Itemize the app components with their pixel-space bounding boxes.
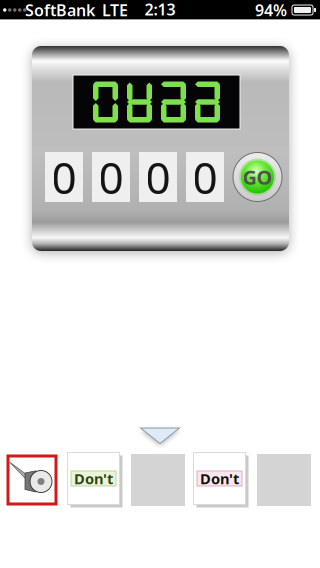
staticText: 2:13 xyxy=(144,0,175,20)
staticText: Don't xyxy=(200,469,239,488)
button[interactable]: Don't green stamp xyxy=(68,453,122,507)
staticText: 0 xyxy=(192,148,217,206)
staticText: 0 xyxy=(145,148,170,206)
staticText: SoftBank xyxy=(25,0,95,21)
button[interactable]: Don't pink stamp xyxy=(194,453,248,507)
staticText: 0 xyxy=(51,148,76,206)
staticText: LTE xyxy=(102,0,128,21)
button[interactable]: GO xyxy=(233,152,282,201)
button[interactable]: Pin tool xyxy=(5,453,59,507)
staticText: 94% xyxy=(255,0,287,21)
staticText: GO xyxy=(242,164,272,190)
staticText: Don't xyxy=(74,469,113,488)
staticText: 0 xyxy=(98,148,123,206)
